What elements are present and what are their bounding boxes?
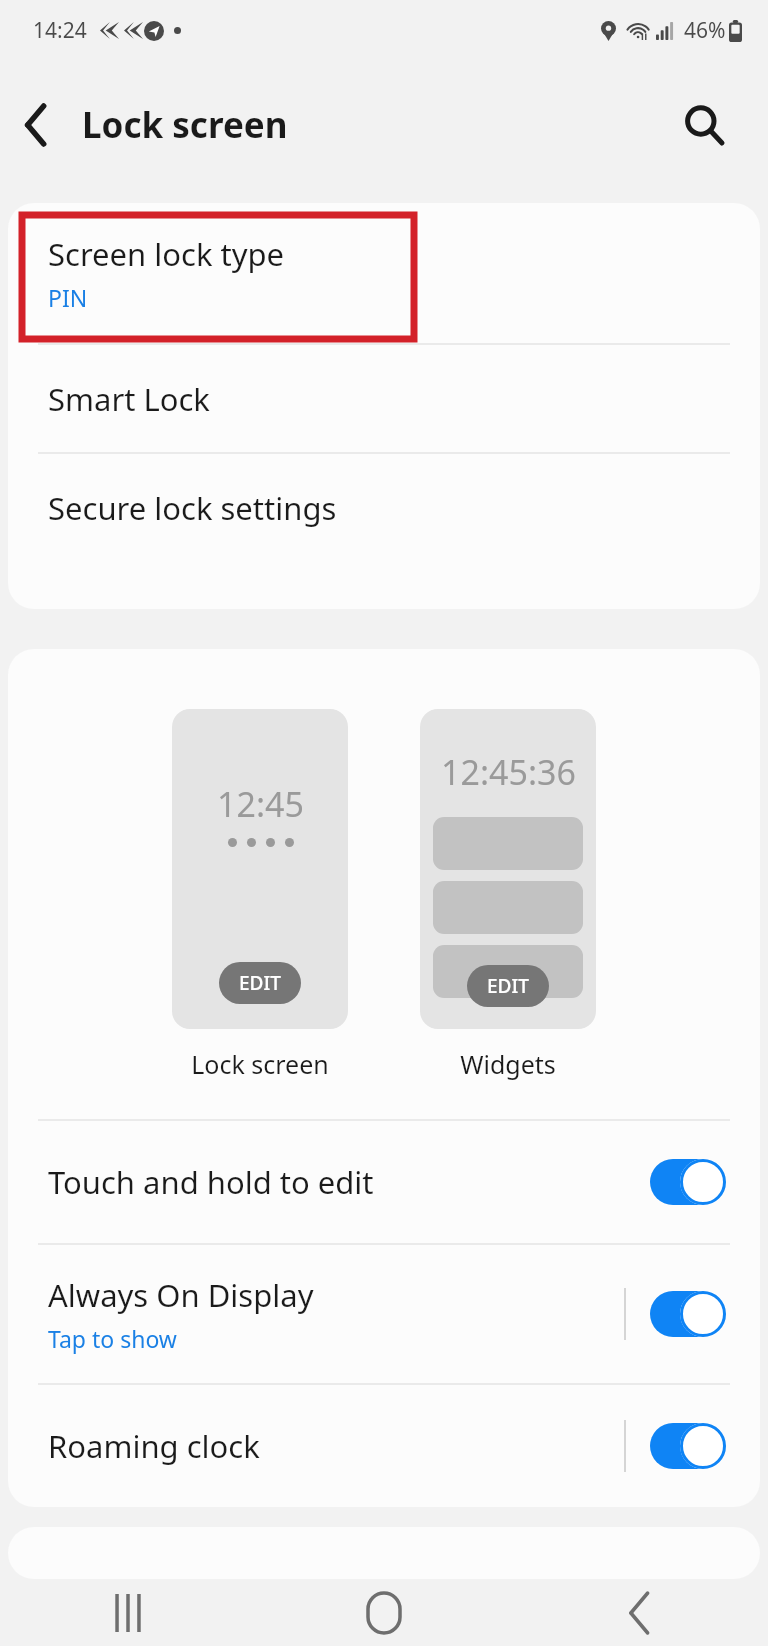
staticText: Always On Display [48, 1274, 314, 1316]
button[interactable]: Search [668, 89, 740, 161]
staticText: 14:24 [33, 16, 87, 45]
staticText: 46% [684, 16, 726, 45]
staticText: Tap to show [48, 1323, 177, 1354]
button[interactable]: 12:45:36 [420, 709, 596, 1029]
button[interactable]: Back [0, 89, 72, 161]
staticText: Secure lock settings [48, 487, 337, 529]
button[interactable]: EDIT [467, 965, 549, 1007]
button[interactable]: Always On Display [8, 1245, 760, 1383]
button[interactable]: Back [512, 1579, 768, 1646]
button[interactable]: EDIT [219, 962, 301, 1004]
button[interactable]: Screen lock type [8, 203, 760, 343]
button[interactable]: Home [256, 1579, 512, 1646]
button[interactable]: Secure lock settings [8, 454, 760, 561]
staticText: EDIT [239, 970, 281, 996]
staticText: Lock screen [191, 1047, 329, 1081]
button[interactable]: Touch and hold to edit toggle [650, 1159, 726, 1205]
staticText: 12:45:36 [441, 749, 576, 795]
button[interactable]: Touch and hold to edit [8, 1121, 760, 1243]
button[interactable]: Recents [0, 1579, 256, 1646]
button[interactable]: Roaming clock [8, 1385, 760, 1507]
staticText: PIN [48, 282, 88, 313]
button[interactable]: Smart Lock [8, 345, 760, 452]
staticText: Smart Lock [48, 378, 210, 420]
staticText: 12:45 [217, 781, 304, 827]
staticText: Widgets [460, 1047, 556, 1081]
staticText: EDIT [487, 973, 529, 999]
staticText: Roaming clock [48, 1425, 260, 1467]
button[interactable]: Always On Display toggle [650, 1291, 726, 1337]
button[interactable]: Roaming clock toggle [650, 1423, 726, 1469]
staticText: Screen lock type [48, 233, 285, 275]
staticText: Touch and hold to edit [48, 1161, 374, 1203]
button[interactable]: 12:45 [172, 709, 348, 1029]
staticText: Lock screen [82, 101, 288, 149]
